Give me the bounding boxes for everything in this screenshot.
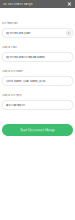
button[interactable]: My Drive/Sales quote	[2, 28, 73, 37]
button[interactable]: Close	[67, 2, 71, 6]
staticText: Output File Name:	[2, 69, 23, 73]
button[interactable]: Start Document Merge	[2, 124, 73, 136]
staticText: My Drive/Sales/{{Company Name}}	[6, 55, 45, 58]
staticText: Start Document Merge	[20, 128, 55, 132]
staticText: application/pdf	[6, 103, 25, 106]
staticText: {{First Name}} {{Last Name}}_QCxx	[6, 79, 45, 82]
staticText: Go Document Merge	[3, 2, 33, 6]
button[interactable]: application/pdf	[2, 100, 73, 109]
button[interactable]: {{First Name}} {{Last Name}}_QCxx	[2, 76, 73, 85]
staticText: File Template:	[2, 21, 18, 25]
staticText: Output File Type:	[2, 93, 22, 97]
staticText: My Drive/Sales quote	[6, 31, 30, 34]
staticText: Output Path:	[2, 45, 17, 49]
button[interactable]: My Drive/Sales/{{Company Name}}	[2, 52, 73, 61]
